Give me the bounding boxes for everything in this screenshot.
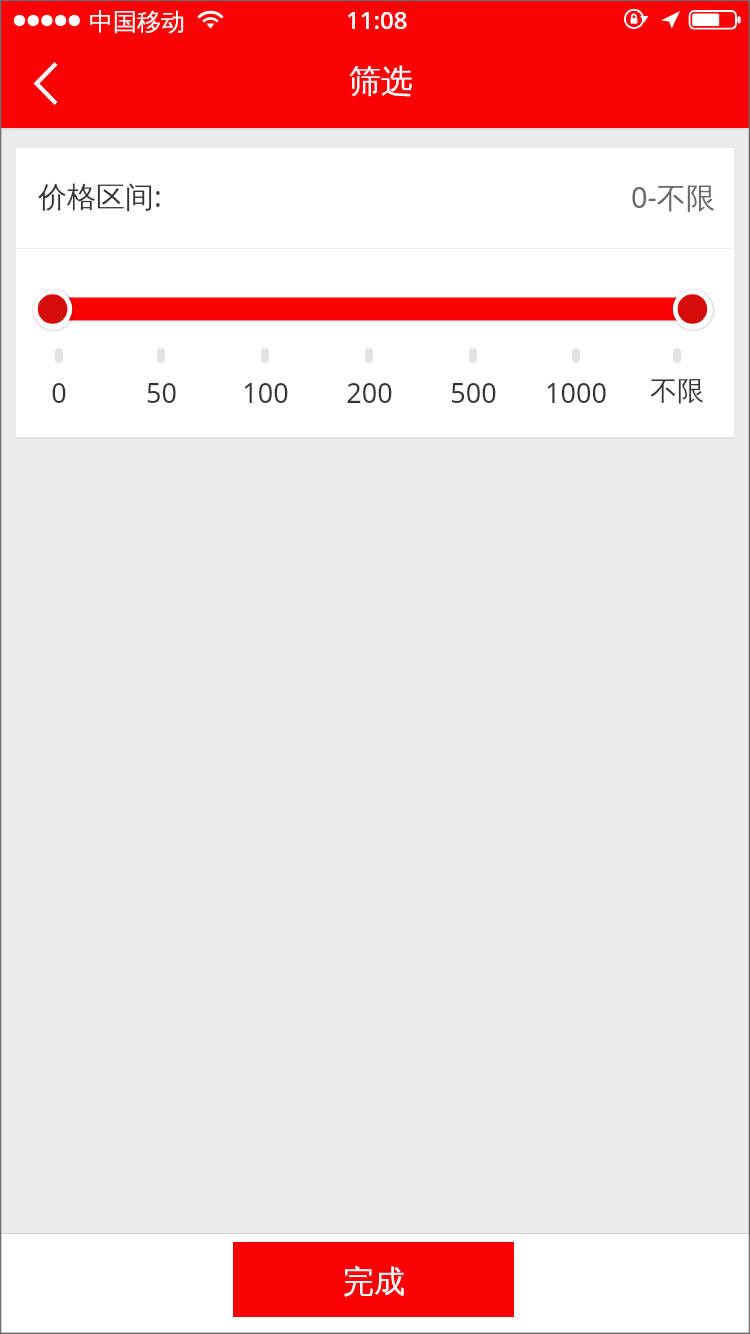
button[interactable]: Back: [0, 40, 90, 128]
button[interactable]: 不限: [626, 345, 728, 407]
button[interactable]: 0: [8, 345, 110, 407]
button[interactable]: 100: [214, 345, 316, 407]
button[interactable]: 价格区间:: [38, 148, 715, 248]
button[interactable]: Minimum price: [33, 289, 73, 329]
staticText: 1000: [545, 374, 607, 411]
staticText: 200: [346, 374, 393, 411]
staticText: 50: [146, 374, 177, 411]
button[interactable]: 200: [318, 345, 420, 407]
button[interactable]: 500: [422, 345, 524, 407]
staticText: 中国移动: [89, 7, 185, 37]
button[interactable]: 1000: [525, 345, 627, 407]
button[interactable]: Maximum price: [672, 289, 712, 329]
staticText: 100: [242, 374, 289, 411]
staticText: 完成: [343, 1262, 405, 1301]
button[interactable]: 50: [110, 345, 212, 407]
staticText: 筛选: [349, 61, 413, 101]
staticText: 价格区间:: [38, 176, 162, 216]
staticText: 0-不限: [631, 177, 715, 217]
staticText: 不限: [650, 374, 704, 408]
button[interactable]: 完成: [233, 1242, 514, 1317]
staticText: 500: [450, 374, 497, 411]
staticText: 0: [51, 374, 67, 411]
staticText: 11:08: [346, 3, 408, 36]
